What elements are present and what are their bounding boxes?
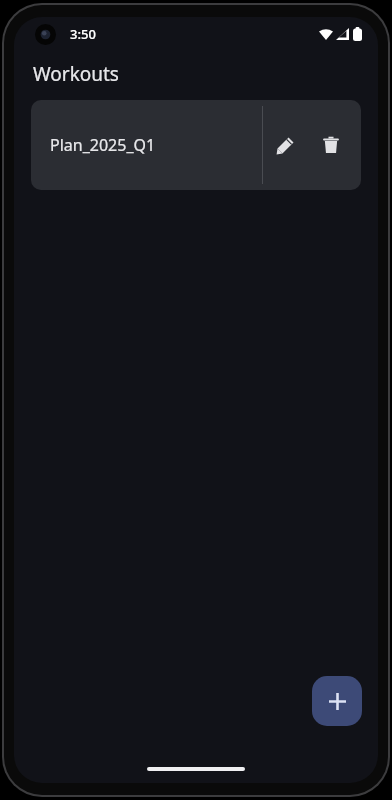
staticText: 3:50 (70, 25, 96, 43)
button[interactable]: Edit (263, 123, 307, 167)
staticText: Plan_2025_Q1 (50, 134, 262, 156)
button[interactable]: Plan_2025_Q1 (31, 100, 361, 190)
button[interactable]: Delete (309, 123, 353, 167)
staticText: Workouts (33, 61, 119, 87)
button[interactable]: Add workout (312, 676, 362, 726)
